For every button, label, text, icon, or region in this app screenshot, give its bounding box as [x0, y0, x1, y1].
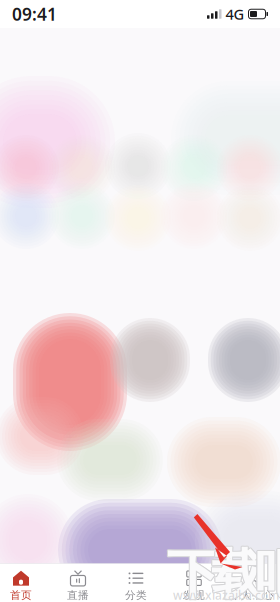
staticText: 载: [211, 542, 264, 602]
staticText: 分类: [125, 589, 147, 602]
staticText: 载: [211, 541, 264, 602]
staticText: 吧: [256, 541, 280, 602]
staticText: 载: [210, 542, 263, 602]
staticText: 吧: [255, 541, 280, 602]
staticText: 下: [168, 543, 221, 602]
staticText: 发现: [183, 589, 205, 602]
button[interactable]: 分类: [108, 569, 164, 602]
staticText: 吧: [255, 543, 280, 602]
staticText: 下: [168, 541, 221, 602]
staticText: 吧: [256, 542, 280, 602]
staticText: 首页: [10, 589, 32, 602]
button[interactable]: 发现: [166, 569, 222, 602]
button[interactable]: 首页: [0, 569, 49, 602]
staticText: 载: [212, 541, 265, 602]
staticText: 下: [166, 542, 219, 602]
staticText: 载: [210, 543, 263, 602]
staticText: 载: [210, 541, 263, 602]
button[interactable]: 直播: [50, 569, 106, 602]
staticText: 载: [211, 543, 264, 602]
staticText: 吧: [254, 543, 280, 602]
staticText: 吧: [254, 541, 280, 602]
staticText: 吧: [255, 542, 280, 602]
staticText: 直播: [67, 589, 89, 602]
staticText: 个人中心: [230, 589, 274, 602]
staticText: 载: [212, 543, 265, 602]
staticText: 下: [167, 543, 220, 602]
staticText: 吧: [254, 542, 280, 602]
staticText: 载: [212, 542, 265, 602]
staticText: 下: [166, 541, 219, 602]
staticText: 09:41: [12, 2, 57, 25]
staticText: 4G: [225, 4, 244, 24]
staticText: www.xiazaiba.com: [173, 587, 279, 602]
button[interactable]: 个人中心: [224, 569, 280, 602]
staticText: 下: [168, 542, 221, 602]
staticText: 下: [167, 541, 220, 602]
staticText: 下: [166, 543, 219, 602]
staticText: 下: [167, 542, 220, 602]
staticText: 吧: [256, 543, 280, 602]
